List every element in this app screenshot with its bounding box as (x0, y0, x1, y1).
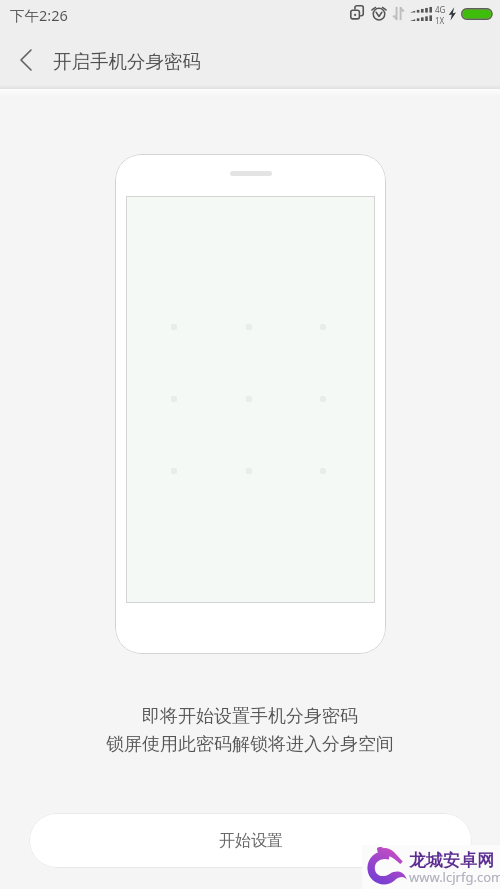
staticText: 4G (435, 4, 446, 15)
staticText: 开启手机分身密码 (53, 50, 201, 73)
staticText: 1X (435, 15, 445, 26)
staticText: 开始设置 (219, 831, 283, 851)
staticText: 即将开始设置手机分身密码 (142, 705, 358, 728)
staticText: 锁屏使用此密码解锁将进入分身空间 (106, 733, 394, 756)
staticText: 龙城安卓网 (409, 850, 494, 871)
staticText: 下午2:26 (10, 5, 68, 25)
button[interactable]: 开始设置 (29, 813, 472, 868)
staticText: www.lcjrfg.com (409, 868, 500, 886)
button[interactable]: Back (0, 35, 50, 85)
